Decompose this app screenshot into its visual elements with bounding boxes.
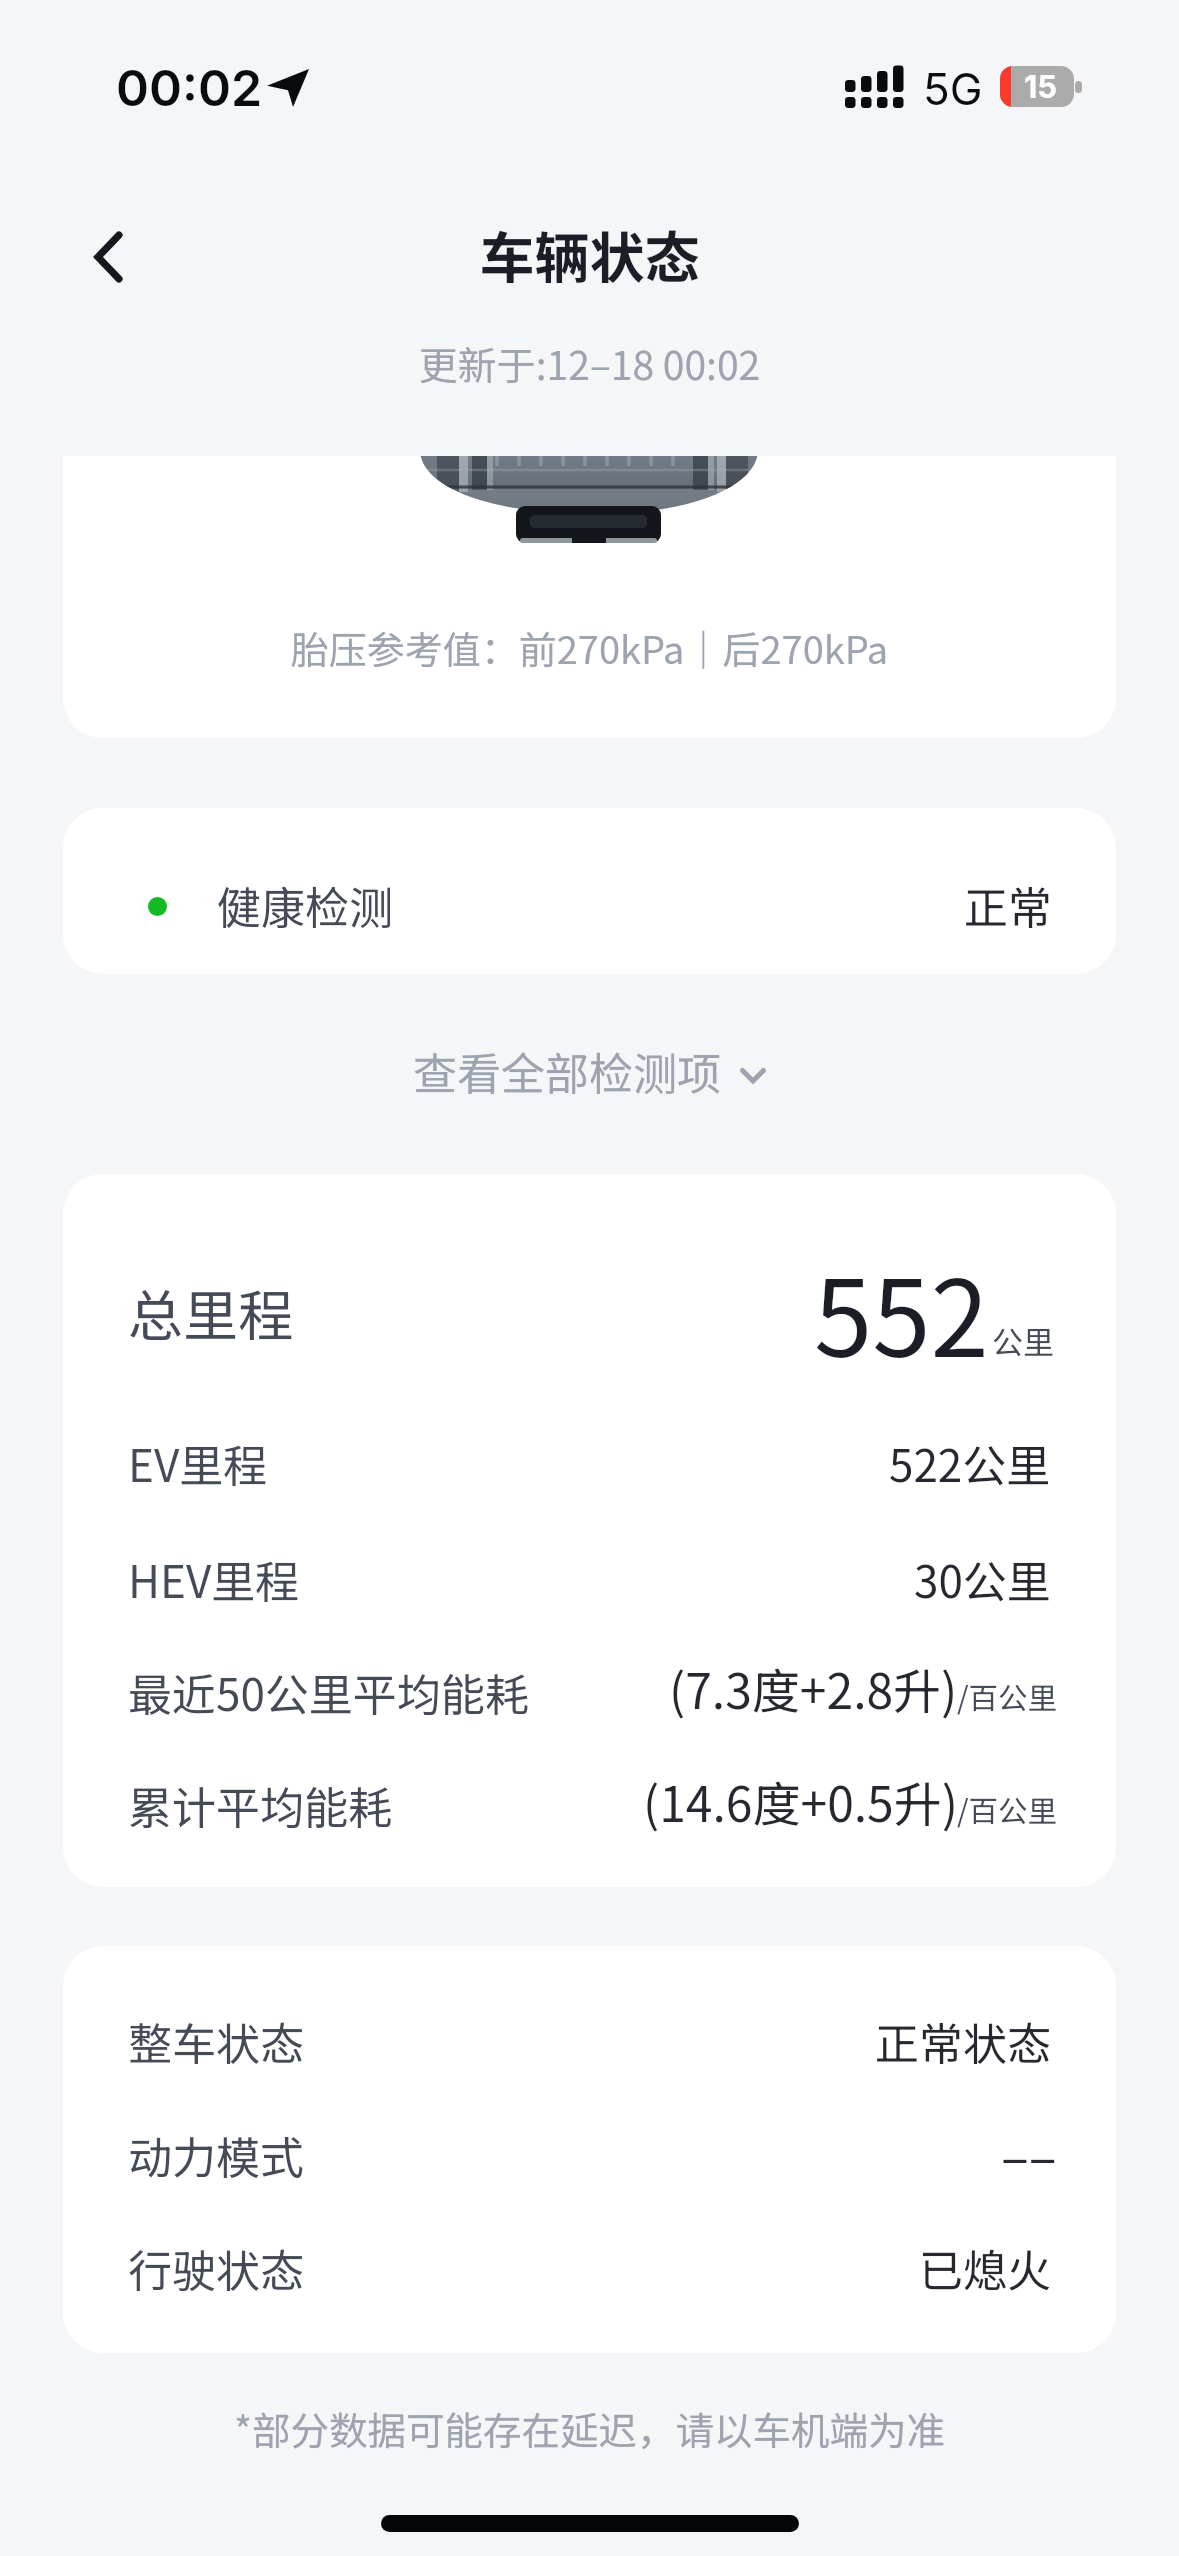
button[interactable]: 健康检测 <box>63 808 1116 974</box>
staticText: 最近50公里平均能耗 <box>128 1660 529 1724</box>
staticText: 正常状态 <box>875 2009 1051 2073</box>
staticText: 已熄火 <box>919 2236 1051 2300</box>
staticText: 累计平均能耗 <box>128 1773 392 1837</box>
staticText: 行驶状态 <box>128 2236 304 2300</box>
staticText: 5G <box>923 62 983 115</box>
staticText: /百公里 <box>957 1788 1058 1831</box>
staticText: 552 <box>814 1235 989 1387</box>
staticText: 公里 <box>992 1318 1054 1363</box>
staticText: 查看全部检测项 <box>413 1039 721 1103</box>
staticText: 00:02 <box>116 58 263 118</box>
staticText: 整车状态 <box>128 2009 304 2073</box>
staticText: 总里程 <box>128 1272 294 1352</box>
staticText: 522公里 <box>889 1431 1051 1495</box>
staticText: 更新于:12–18 00:02 <box>0 335 1179 391</box>
staticText: 15 <box>1024 68 1058 106</box>
staticText: 30公里 <box>914 1547 1051 1611</box>
staticText: 健康检测 <box>217 873 393 937</box>
button[interactable]: 查看全部检测项 <box>0 1025 1179 1117</box>
staticText: 胎压参考值：前270kPa｜后270kPa <box>63 620 1116 675</box>
staticText: HEV里程 <box>128 1547 300 1611</box>
staticText: 正常 <box>964 873 1052 937</box>
staticText: –– <box>1001 2116 1057 2182</box>
staticText: (7.3度+2.8升) <box>669 1653 958 1719</box>
staticText: (14.6度+0.5升) <box>643 1766 958 1832</box>
button[interactable]: 胎压参考值：前270kPa｜后270kPa <box>63 456 1116 738</box>
button[interactable]: Back <box>56 205 161 310</box>
staticText: 车辆状态 <box>0 214 1179 294</box>
staticText: 动力模式 <box>128 2123 304 2187</box>
staticText: /百公里 <box>957 1675 1058 1718</box>
staticText: *部分数据可能存在延迟，请以车机端为准 <box>0 2400 1179 2456</box>
staticText: EV里程 <box>128 1431 268 1495</box>
